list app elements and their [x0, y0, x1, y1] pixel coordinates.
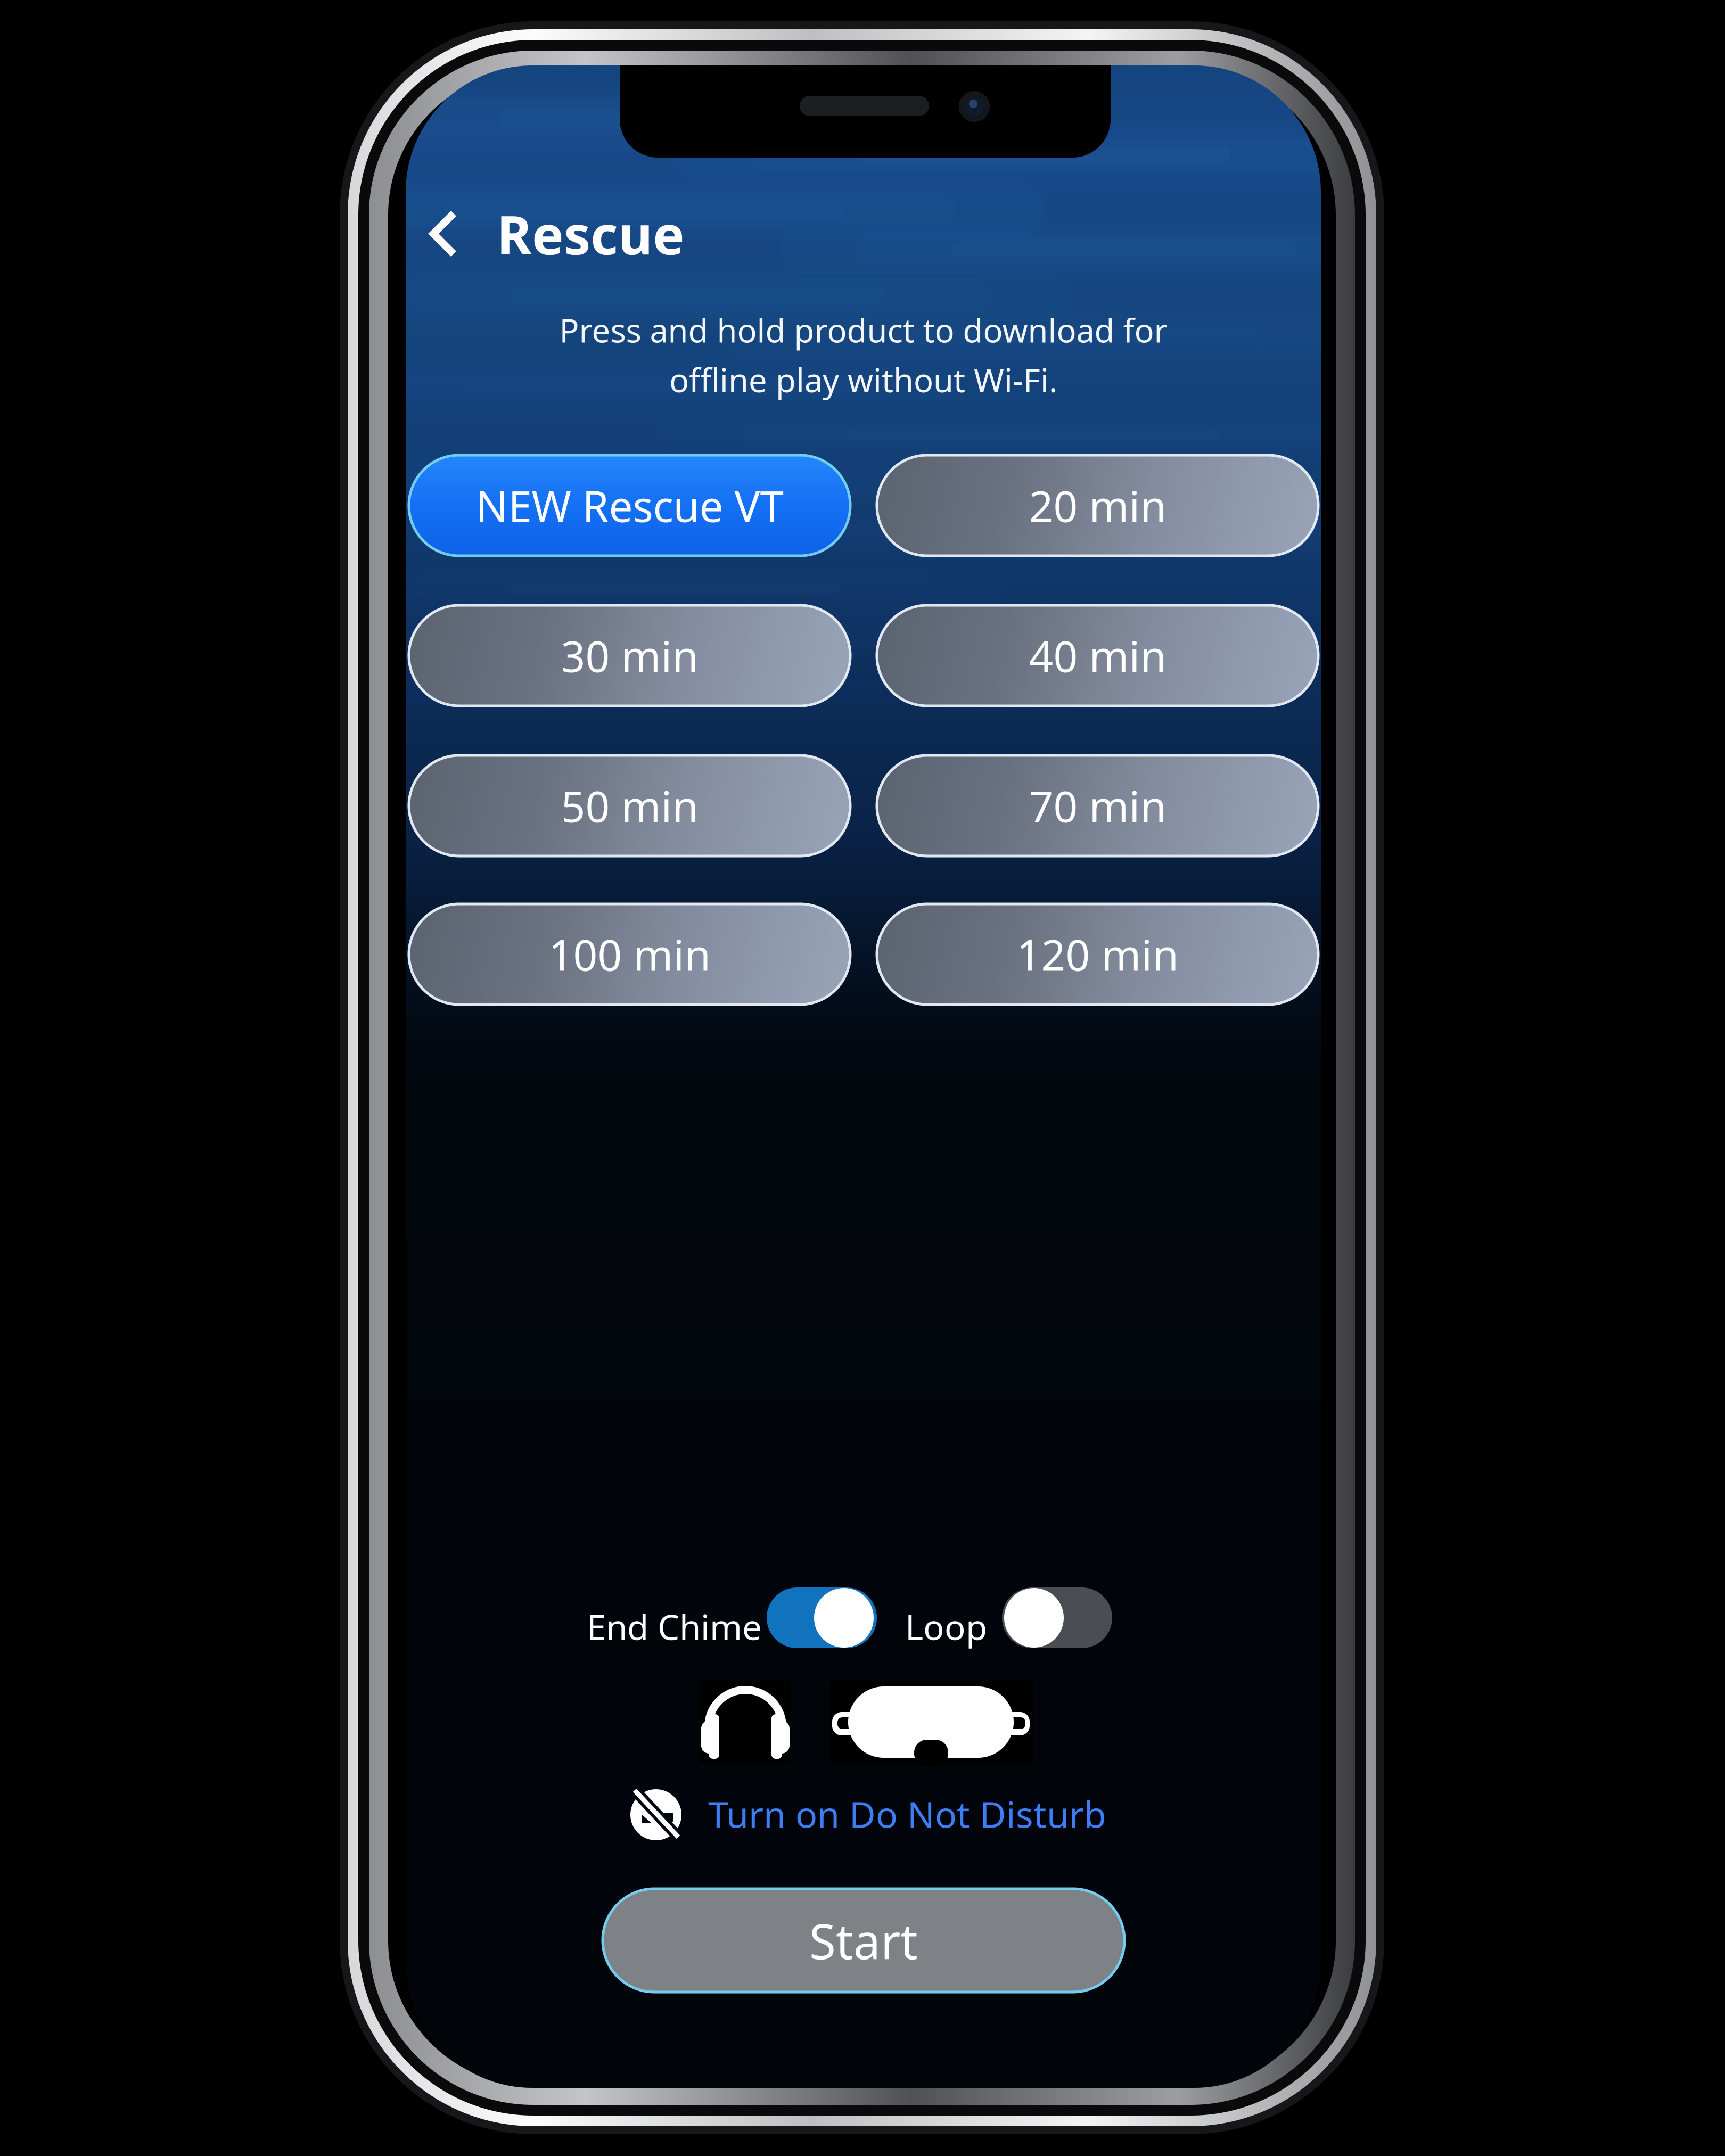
button[interactable]: 50 min: [409, 755, 850, 856]
staticText: 100 min: [549, 926, 710, 982]
staticText: offline play without Wi-Fi.: [669, 358, 1057, 401]
staticText: 20 min: [1029, 477, 1166, 534]
staticText: End Chime: [587, 1603, 762, 1650]
staticText: 70 min: [1029, 777, 1166, 834]
button[interactable]: Back: [416, 201, 469, 266]
button[interactable]: 120 min: [877, 904, 1318, 1005]
button[interactable]: 100 min: [409, 904, 850, 1005]
staticText: 50 min: [561, 777, 698, 834]
button[interactable]: 40 min: [877, 605, 1318, 706]
button[interactable]: End Chime: [587, 1587, 877, 1648]
button[interactable]: Sleep mask: [829, 1681, 1033, 1763]
button[interactable]: 20 min: [877, 455, 1318, 556]
button[interactable]: 30 min: [409, 605, 850, 706]
staticText: Turn on Do Not Disturb: [708, 1790, 1106, 1838]
staticText: Start: [809, 1908, 918, 1972]
staticText: 30 min: [561, 627, 698, 684]
button[interactable]: Loop: [905, 1587, 1112, 1648]
staticText: NEW Rescue VT: [476, 477, 783, 534]
button[interactable]: Turn on Do Not Disturb: [629, 1782, 1108, 1845]
button[interactable]: Headphones: [700, 1681, 791, 1763]
button[interactable]: NEW Rescue VT: [409, 455, 850, 556]
button[interactable]: Start: [603, 1889, 1124, 1992]
button[interactable]: 70 min: [877, 755, 1318, 856]
staticText: Loop: [905, 1603, 987, 1650]
staticText: Press and hold product to download for: [559, 308, 1167, 352]
staticText: Rescue: [497, 199, 685, 269]
staticText: 120 min: [1017, 926, 1178, 982]
staticText: 40 min: [1029, 627, 1166, 684]
